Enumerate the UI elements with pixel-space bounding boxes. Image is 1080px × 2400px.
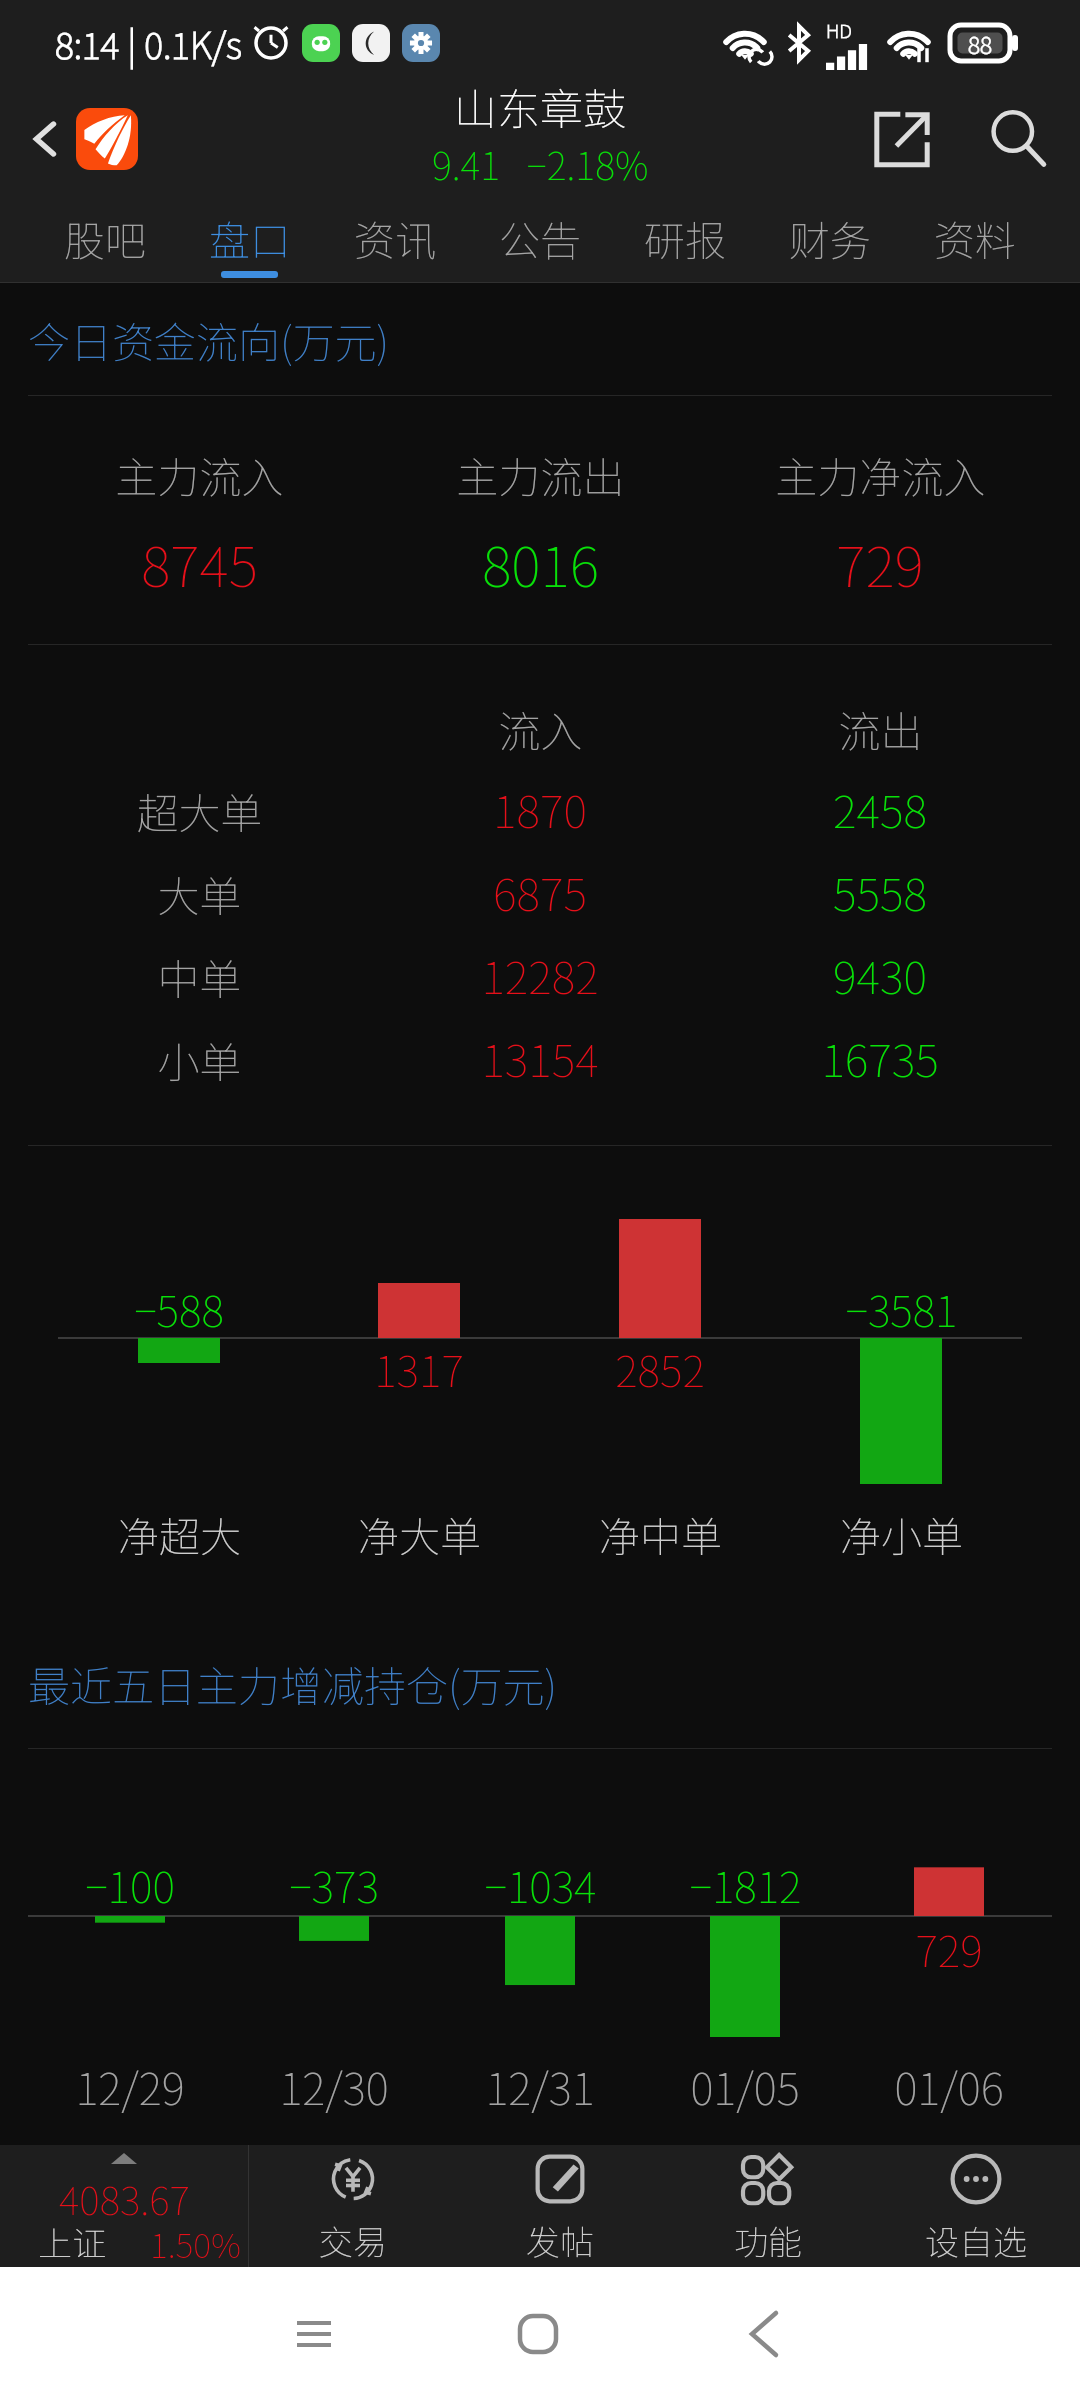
button[interactable]: 交易 (249, 2145, 456, 2267)
staticText: 5558 (833, 859, 927, 924)
staticText: 净小单 (840, 1504, 963, 1563)
button[interactable]: 财务 (757, 192, 902, 283)
button[interactable]: Back (14, 107, 78, 171)
button[interactable]: 研报 (612, 192, 757, 283)
staticText: 盘口 (209, 208, 291, 267)
staticText: 最近五日主力增减持仓(万元) (28, 1653, 558, 1714)
staticText: 12282 (481, 942, 599, 1007)
staticText: 主力净流入 (775, 444, 986, 505)
button[interactable]: 盘口 (177, 192, 322, 283)
button[interactable]: Eastmoney home (76, 108, 138, 170)
staticText: −2.18% (527, 136, 649, 191)
staticText: 流入 (498, 698, 583, 759)
staticText: 16735 (821, 1025, 939, 1090)
button[interactable]: 公告 (467, 192, 612, 283)
staticText: 财务 (789, 208, 871, 267)
button[interactable]: 资讯 (322, 192, 467, 283)
staticText: 发帖 (526, 2216, 594, 2265)
staticText: 设自选 (925, 2216, 1027, 2265)
staticText: 1317 (374, 1337, 464, 1399)
staticText: 山东章鼓 (454, 75, 626, 137)
staticText: 流出 (838, 698, 923, 759)
staticText: 8745 (141, 522, 258, 603)
staticText: 8:14 | 0.1K/s (55, 17, 242, 69)
staticText: 净超大 (118, 1504, 241, 1563)
staticText: −1812 (689, 1853, 802, 1915)
button[interactable]: Back (729, 2299, 799, 2369)
staticText: 公告 (499, 208, 581, 267)
staticText: 2458 (833, 776, 927, 841)
staticText: 资料 (934, 208, 1016, 267)
staticText: 9430 (833, 942, 927, 1007)
button[interactable]: Recents (279, 2299, 349, 2369)
staticText: 超大单 (136, 780, 263, 841)
staticText: 729 (915, 1917, 983, 1979)
staticText: 大单 (157, 863, 242, 924)
button[interactable]: 资料 (902, 192, 1047, 283)
staticText: 88 (968, 27, 992, 60)
staticText: 净大单 (358, 1504, 481, 1563)
button[interactable]: 上证指数 4083.67 +1.50% (0, 2145, 248, 2267)
staticText: 01/05 (690, 2054, 800, 2118)
button[interactable]: 股吧 (33, 192, 177, 283)
staticText: 上证 (38, 2217, 106, 2266)
button[interactable]: Share (863, 100, 941, 178)
staticText: 资讯 (354, 208, 436, 267)
staticText: 股吧 (64, 208, 146, 267)
button[interactable]: 发帖 (456, 2145, 664, 2267)
staticText: −3581 (845, 1277, 958, 1339)
staticText: 1.50% (150, 2219, 241, 2268)
staticText: 今日资金流向(万元) (28, 309, 390, 370)
staticText: 4083.67 (59, 2170, 190, 2226)
staticText: 9.41 (432, 136, 501, 191)
staticText: 小单 (157, 1029, 242, 1090)
staticText: −588 (134, 1277, 224, 1339)
button[interactable]: 功能 (664, 2145, 872, 2267)
staticText: 8016 (482, 522, 599, 603)
staticText: 6875 (493, 859, 587, 924)
button[interactable]: Home (503, 2299, 573, 2369)
button[interactable]: 设自选 (872, 2145, 1080, 2267)
staticText: 12/31 (485, 2054, 595, 2118)
staticText: 研报 (644, 208, 726, 267)
staticText: 01/06 (894, 2054, 1004, 2118)
staticText: 主力流入 (115, 444, 284, 505)
staticText: 主力流出 (456, 444, 625, 505)
staticText: 交易 (319, 2216, 387, 2265)
staticText: −373 (289, 1853, 379, 1915)
staticText: HD (826, 16, 852, 44)
staticText: 功能 (734, 2216, 802, 2265)
staticText: 12/29 (75, 2054, 185, 2118)
staticText: 中单 (157, 946, 242, 1007)
staticText: 1870 (493, 776, 587, 841)
staticText: 12/30 (279, 2054, 389, 2118)
button[interactable]: Search (976, 96, 1062, 182)
staticText: 729 (836, 522, 924, 603)
staticText: 13154 (481, 1025, 599, 1090)
staticText: −1034 (484, 1853, 597, 1915)
staticText: 2852 (615, 1337, 705, 1399)
staticText: −100 (85, 1853, 175, 1915)
staticText: 净中单 (599, 1504, 722, 1563)
